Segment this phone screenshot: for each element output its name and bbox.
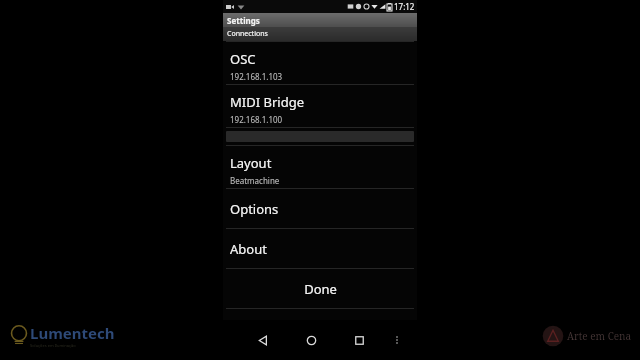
staticText: Connections [227, 29, 268, 39]
staticText: 17:12 [394, 1, 415, 12]
staticText: Arte em Cena [567, 329, 632, 343]
button[interactable]: Recent apps [346, 327, 372, 353]
staticText: OSC [230, 50, 256, 68]
button[interactable]: Done [223, 269, 417, 308]
button[interactable]: More options [386, 329, 408, 351]
staticText: 192.168.1.100 [230, 114, 283, 125]
button[interactable]: Options [223, 189, 417, 228]
button[interactable]: MIDI Bridge [223, 85, 417, 127]
button[interactable]: Settings [223, 13, 417, 27]
button[interactable]: OSC [223, 42, 417, 84]
staticText: Options [230, 200, 279, 218]
button[interactable]: Connections [223, 27, 417, 41]
button[interactable]: Home [298, 327, 324, 353]
staticText: Soluções em Iluminação [30, 343, 76, 348]
staticText: Lumentech [30, 323, 115, 343]
staticText: Settings [227, 15, 260, 26]
staticText: MIDI Bridge [230, 93, 304, 111]
staticText: Beatmachine [230, 175, 280, 186]
staticText: 192.168.1.103 [230, 71, 283, 82]
staticText: Done [304, 280, 337, 298]
staticText: About [230, 240, 267, 258]
button[interactable]: Layout [223, 146, 417, 188]
button[interactable]: About [223, 229, 417, 268]
button[interactable]: Back [250, 327, 276, 353]
staticText: Layout [230, 154, 272, 172]
